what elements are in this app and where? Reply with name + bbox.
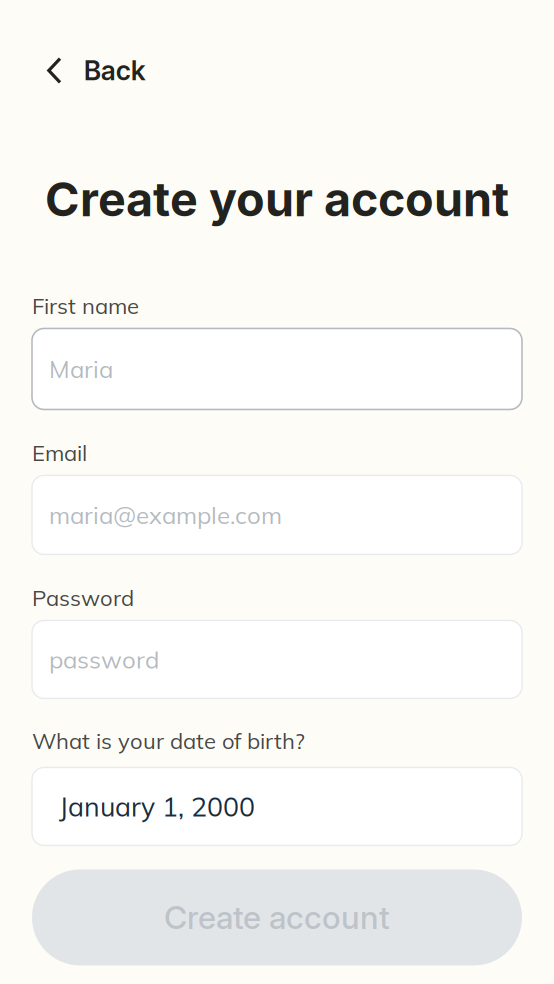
staticText: maria@example.com xyxy=(49,500,282,530)
staticText: Password xyxy=(32,584,134,611)
staticText: January 1, 2000 xyxy=(59,790,255,823)
button[interactable]: Create account xyxy=(32,869,522,965)
staticText: First name xyxy=(32,292,139,319)
button[interactable]: Back xyxy=(0,0,554,99)
staticText: Email xyxy=(32,439,87,466)
staticText: Create account xyxy=(164,898,390,937)
staticText: Back xyxy=(84,54,146,87)
staticText: Maria xyxy=(49,354,113,384)
staticText: password xyxy=(49,644,159,674)
button[interactable]: Password xyxy=(32,620,522,698)
button[interactable]: Date of birth xyxy=(32,767,522,845)
staticText: What is your date of birth? xyxy=(32,727,305,754)
button[interactable]: First name xyxy=(32,328,522,409)
button[interactable]: Email xyxy=(32,475,522,554)
staticText: Create your account xyxy=(45,171,509,227)
